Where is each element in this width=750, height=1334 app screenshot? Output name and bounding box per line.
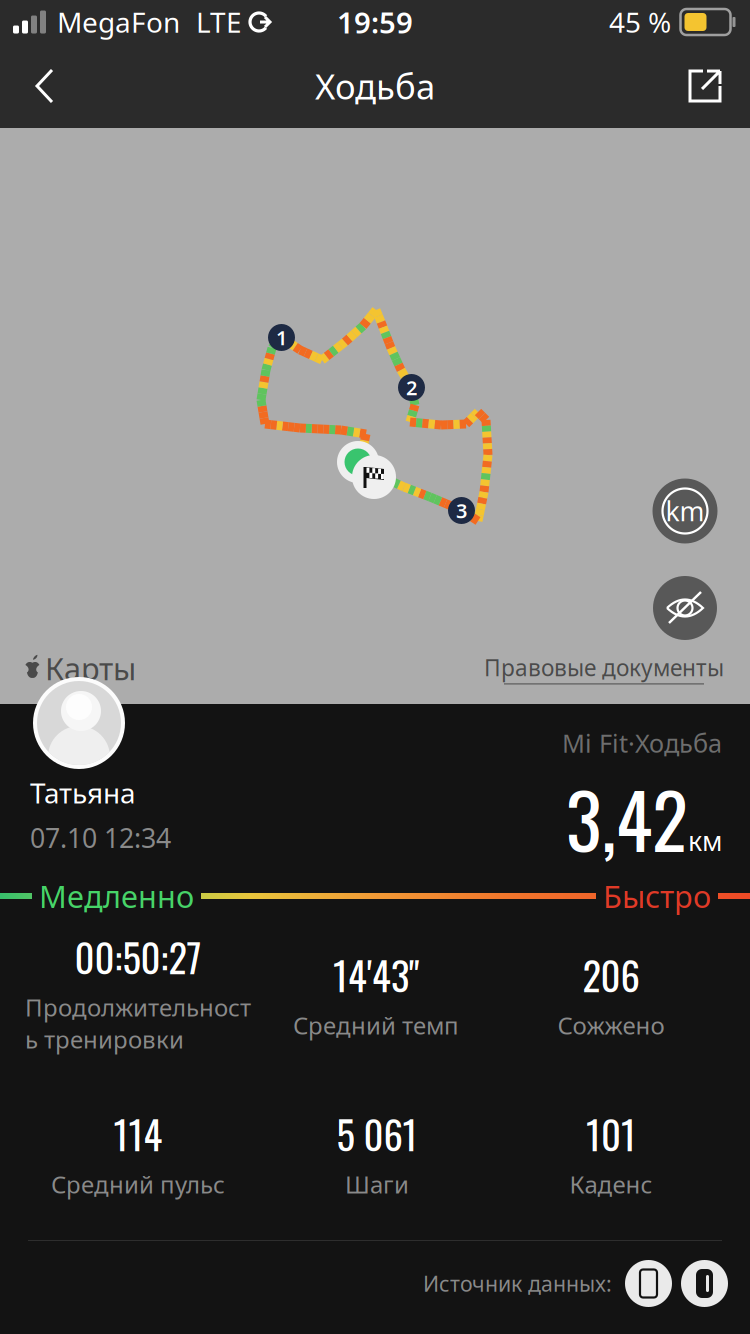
staticText: Быстро	[603, 876, 711, 916]
staticText: Ходьба	[315, 63, 435, 109]
staticText: 07.10 12:34	[30, 820, 171, 855]
staticText: 5 061	[336, 1105, 417, 1162]
staticText: км	[688, 823, 722, 858]
staticText: 45 %	[609, 3, 671, 41]
staticText: Медленно	[39, 876, 194, 916]
staticText: 2	[406, 374, 417, 401]
button[interactable]: Back	[0, 44, 90, 128]
staticText: Правовые документы	[484, 652, 724, 682]
button[interactable]: Share	[660, 44, 750, 128]
staticText: 114	[113, 1105, 162, 1162]
staticText: Средний темп	[293, 1009, 459, 1041]
staticText: 3,42	[566, 763, 688, 874]
staticText: Продолжительност ь тренировки	[25, 991, 251, 1055]
staticText: 3	[456, 497, 467, 524]
staticText: 206	[582, 946, 639, 1003]
staticText: LTE	[196, 3, 242, 41]
staticText: MegaFon	[57, 3, 180, 41]
staticText: Карты	[45, 648, 136, 689]
staticText: 00:50:27	[74, 928, 201, 985]
staticText: Сожжено	[557, 1009, 664, 1041]
button[interactable]: Hide route	[653, 576, 717, 640]
staticText: Источник данных:	[423, 1269, 612, 1298]
staticText: Шаги	[345, 1168, 409, 1200]
staticText: 1	[276, 324, 287, 351]
staticText: Mi Fit·Ходьба	[562, 726, 722, 760]
staticText: Каденс	[569, 1168, 652, 1200]
button[interactable]: Units	[653, 479, 717, 543]
staticText: 101	[586, 1105, 636, 1162]
staticText: Татьяна	[30, 774, 136, 811]
staticText: 14'43"	[333, 946, 419, 1003]
staticText: 19:59	[337, 2, 413, 41]
staticText: Средний пульс	[51, 1168, 225, 1200]
staticText: km	[665, 493, 704, 529]
